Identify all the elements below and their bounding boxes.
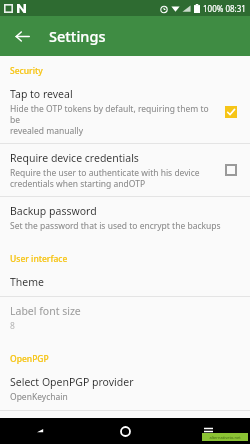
staticText: 100% 08:31 [203,3,246,14]
button[interactable]: Tap to reveal [0,80,250,143]
staticText: Select OpenPGP provider [10,375,134,389]
button[interactable]: Back [0,418,84,444]
button[interactable]: Checked [220,101,242,123]
staticText: OpenPGP [10,353,49,365]
staticText: Require the user to authenticate with hi… [10,167,200,189]
staticText: alternativeto.net [209,435,241,440]
staticText: Tap to reveal [10,87,73,101]
staticText: Label font size [10,304,81,318]
button[interactable]: Backup password [0,197,250,239]
button[interactable]: Require device credentials [0,144,250,196]
button[interactable]: Theme [0,268,250,296]
button[interactable]: Unchecked [220,159,242,181]
staticText: Hide the OTP tokens by default, requirin… [10,103,214,136]
button[interactable]: Label font size [0,297,250,339]
button[interactable]: Back [6,20,38,52]
staticText: Theme [10,275,44,289]
staticText: Require device credentials [10,151,139,165]
staticText: Security [10,65,43,77]
button[interactable]: Home [84,418,167,444]
staticText: Backup password [10,204,97,218]
button[interactable]: Select OpenPGP provider [0,368,250,410]
staticText: OpenKeychain [10,391,68,403]
staticText: User interface [10,253,68,265]
staticText: 8 [10,320,15,332]
staticText: Settings [49,26,106,46]
staticText: Set the password that is used to encrypt… [10,220,221,232]
button[interactable]: Recent apps [167,418,250,444]
